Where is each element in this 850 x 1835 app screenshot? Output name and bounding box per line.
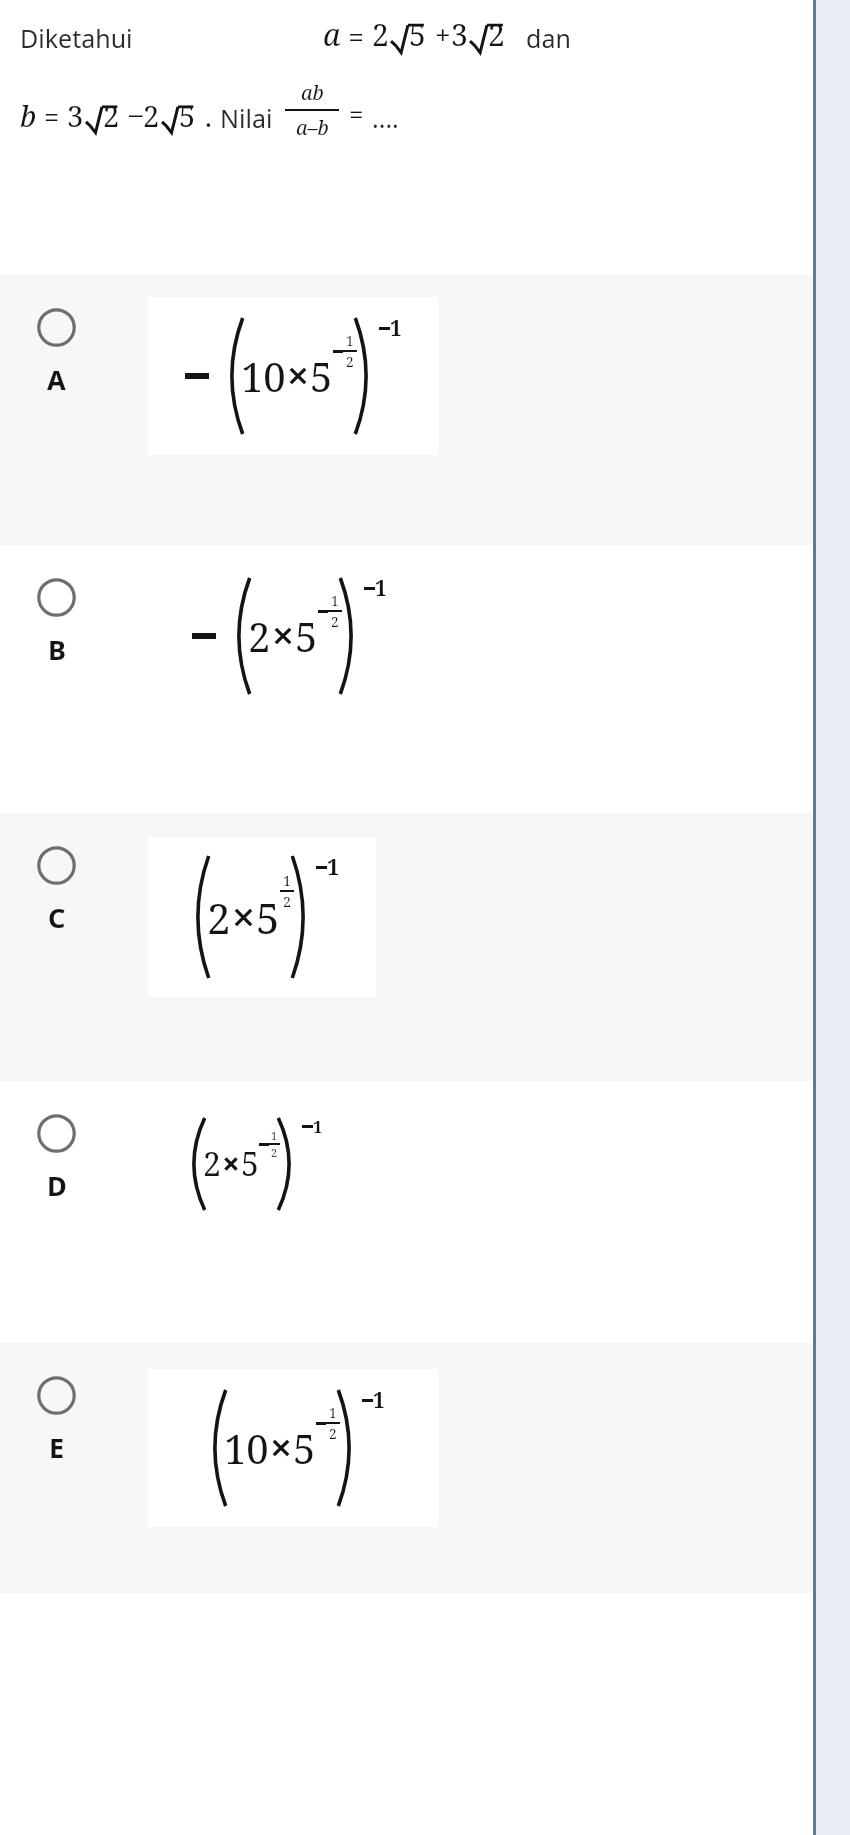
staticText: 2 [488,14,505,55]
staticText: 1 [331,591,339,610]
staticText: b [20,96,37,135]
staticText: 1 [373,1386,385,1414]
staticText: ab [301,79,324,106]
staticText: C [48,899,66,936]
other: Option E [37,1376,76,1415]
staticText: = [341,17,372,55]
staticText: 5 [256,889,280,946]
staticText: 1 [327,852,340,882]
button[interactable]: Option D [0,1081,814,1343]
staticText: 1 [329,1403,337,1422]
staticText: D [47,1167,67,1204]
staticText: 5 [295,609,318,663]
staticText: 2 [143,96,160,135]
staticText: 5 [310,349,333,403]
staticText: dan [526,21,571,55]
staticText: Diketahui [20,21,133,55]
staticText: 2 [203,1142,221,1186]
staticText: = [37,98,67,135]
staticText: 2 [283,892,291,911]
staticText: 1 [283,871,291,890]
staticText: 2 [331,612,339,631]
staticText: 1 [375,574,387,602]
staticText: .... [372,101,399,135]
staticText: 1 [390,314,402,342]
staticText: 1 [271,1128,278,1143]
staticText: 2 [248,609,271,663]
staticText: + [435,15,451,53]
staticText: 10 [224,1421,269,1475]
staticText: 1 [313,1115,323,1138]
staticText: 2 [372,14,389,55]
button[interactable]: Option C [0,813,814,1081]
staticText: A [47,361,66,398]
staticText: 2 [329,1424,337,1443]
other: Option D [37,1114,76,1153]
button[interactable]: Option A [0,275,814,545]
staticText: 2 [271,1145,278,1160]
other: Option C [37,846,76,885]
staticText: 5 [179,96,196,135]
staticText: 5 [241,1142,259,1186]
staticText: 3 [451,14,468,55]
staticText: 10 [241,349,286,403]
other: Option A [37,308,76,347]
staticText: 2 [346,352,354,371]
button[interactable]: Option E [0,1343,814,1593]
staticText: 2 [207,889,231,946]
staticText: Nilai [220,101,273,135]
staticText: – [129,95,143,132]
staticText: = [349,96,364,131]
staticText: 2 [103,96,120,135]
staticText: . [205,98,212,135]
button[interactable]: Option B [0,545,814,813]
staticText: E [49,1429,65,1466]
staticText: a–b [296,114,329,141]
staticText: 3 [67,96,84,135]
staticText: B [48,631,66,668]
staticText: 5 [409,14,426,55]
other: Option B [37,578,76,617]
staticText: 5 [293,1421,316,1475]
staticText: a [323,14,341,55]
staticText: 1 [346,331,354,350]
